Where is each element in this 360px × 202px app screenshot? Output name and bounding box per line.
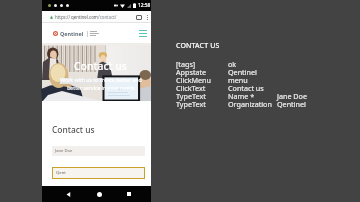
staticText: qentinel.com: [71, 14, 98, 20]
button[interactable]: Home: [93, 188, 105, 200]
staticText: ClickText: [176, 83, 206, 93]
button[interactable]: Menu: [139, 30, 147, 37]
staticText: TypeText: [176, 99, 206, 109]
staticText: [tags]: [176, 59, 196, 69]
staticText: Contact us: [74, 59, 127, 73]
staticText: https://: [55, 14, 71, 20]
staticText: ok: [228, 59, 237, 69]
staticText: Qentinel: [228, 67, 257, 77]
staticText: Appstate: [176, 67, 207, 77]
staticText: Contact us: [228, 83, 264, 93]
staticText: menu: [228, 75, 248, 85]
staticText: TypeText: [176, 91, 206, 101]
staticText: Work with us to create better and: [60, 76, 142, 83]
staticText: 12:58: [138, 2, 151, 9]
button[interactable]: Recent apps: [123, 188, 135, 200]
staticText: Jane Doe: [55, 148, 73, 154]
staticText: Qentinel: [60, 30, 84, 37]
staticText: Qent: [56, 170, 66, 176]
staticText: CONTACT US: [176, 41, 220, 51]
staticText: Contact us: [52, 124, 95, 135]
staticText: Name *: [228, 91, 255, 101]
staticText: better service in your needs: [67, 84, 135, 91]
staticText: /contact/: [98, 14, 117, 20]
button[interactable]: Back: [62, 188, 74, 200]
staticText: Organization: [228, 99, 272, 109]
staticText: Jane Doe: [277, 91, 308, 101]
staticText: ClickMenu: [176, 75, 211, 85]
staticText: Qentinel: [277, 99, 306, 109]
